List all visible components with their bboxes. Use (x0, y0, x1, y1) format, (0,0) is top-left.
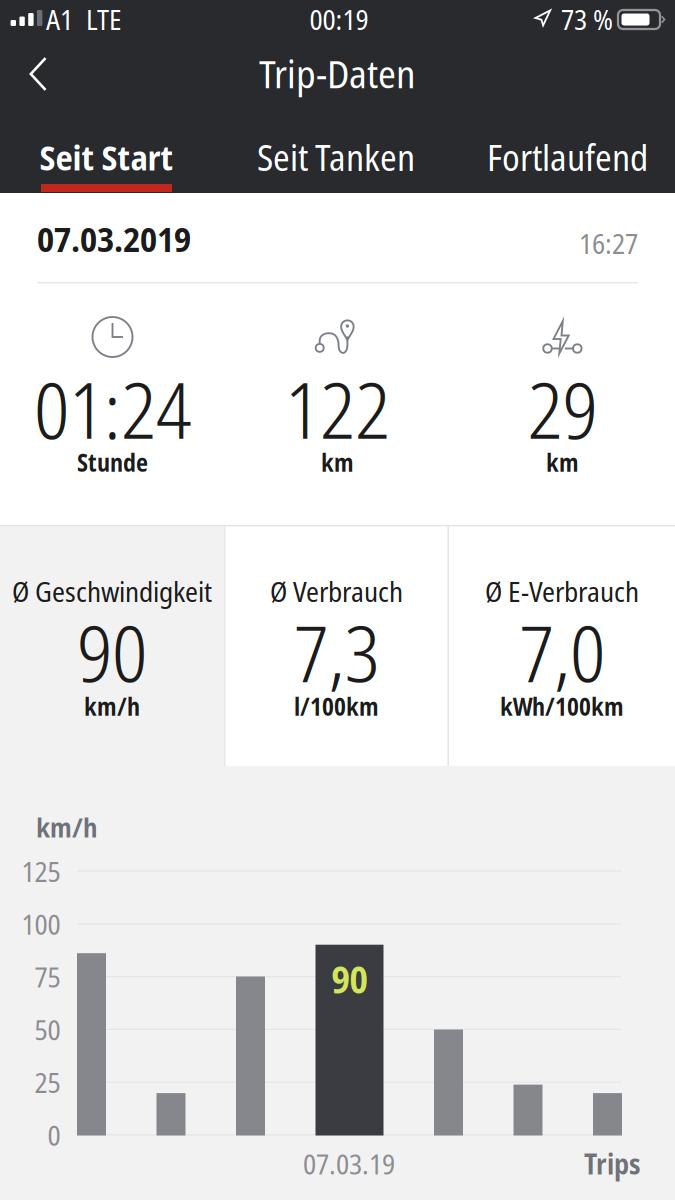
staticText: 01:24 (34, 356, 191, 461)
staticText: 25 (34, 1063, 60, 1101)
staticText: Trip-Daten (259, 47, 416, 100)
staticText: km (546, 446, 579, 479)
staticText: Ø E-Verbrauch (485, 572, 639, 610)
staticText: 73 % (561, 0, 613, 38)
staticText: km (321, 446, 354, 479)
staticText: Trips (584, 1144, 641, 1183)
button[interactable]: Ø E-Verbrauch (449, 525, 675, 766)
staticText: 07.03.2019 (37, 215, 191, 262)
button[interactable]: Seit Tanken (231, 126, 441, 188)
staticText: 100 (21, 905, 60, 943)
staticText: 122 (285, 356, 390, 461)
staticText: 75 (34, 958, 60, 996)
staticText: 125 (21, 852, 60, 890)
staticText: km/h (36, 809, 98, 845)
button[interactable]: Seit Start (1, 126, 211, 188)
staticText: Fortlaufend (487, 132, 648, 181)
staticText: km/h (84, 690, 140, 723)
staticText: A1 (46, 0, 73, 38)
staticText: 7,0 (519, 599, 605, 704)
button[interactable]: Zurück (6, 48, 70, 100)
button[interactable]: Fortlaufend (462, 126, 672, 188)
staticText: 0 (47, 1116, 60, 1154)
staticText: Ø Geschwindigkeit (12, 572, 212, 610)
staticText: Seit Start (39, 133, 173, 181)
staticText: l/100km (294, 690, 379, 723)
staticText: kWh/100km (500, 690, 624, 723)
staticText: Stunde (77, 446, 148, 479)
button[interactable]: Ø Verbrauch (225, 525, 447, 766)
staticText: 50 (34, 1010, 60, 1048)
staticText: 90 (331, 954, 367, 1004)
staticText: 07.03.19 (303, 1144, 395, 1183)
staticText: 00:19 (309, 0, 368, 38)
button[interactable]: Ø Geschwindigkeit (0, 525, 224, 766)
staticText: LTE (86, 0, 122, 38)
staticText: Ø Verbrauch (270, 572, 403, 610)
staticText: 90 (77, 599, 147, 704)
staticText: 7,3 (293, 599, 379, 704)
staticText: Seit Tanken (257, 132, 415, 181)
staticText: 29 (527, 356, 597, 461)
staticText: 16:27 (579, 224, 638, 262)
